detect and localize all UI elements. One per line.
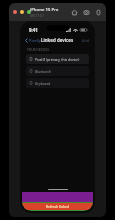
staticText: Refresh linked [46,205,69,209]
staticText: 9:41 [29,27,38,33]
button[interactable]: Bluetooth [26,66,89,76]
button[interactable]: Pixel 8 (primary, this device) [26,54,89,64]
staticText: iOS 17.0.1 [30,14,45,18]
button[interactable]: Close [13,10,17,14]
button[interactable]: Screenshot [82,8,90,16]
button[interactable]: Home [70,8,78,16]
button[interactable]: Add [82,38,90,43]
staticText: Pixelly [29,38,41,43]
staticText: iPhone 15 Pro [30,7,59,13]
staticText: Linked devices [41,37,74,43]
staticText: Bluetooth [35,69,51,74]
staticText: Pixel 8 (primary, this device) [35,57,80,62]
button[interactable]: Keyboard [26,78,89,88]
button[interactable]: Refresh linked [22,203,93,210]
button[interactable]: Minimize [20,10,24,14]
staticText: Add [82,38,90,43]
button[interactable]: Pixelly [25,38,41,43]
button[interactable]: Rotate [94,8,102,16]
staticText: YOUR DEVICES [27,48,49,52]
button[interactable]: Zoom [27,10,31,14]
staticText: Keyboard [35,81,51,86]
